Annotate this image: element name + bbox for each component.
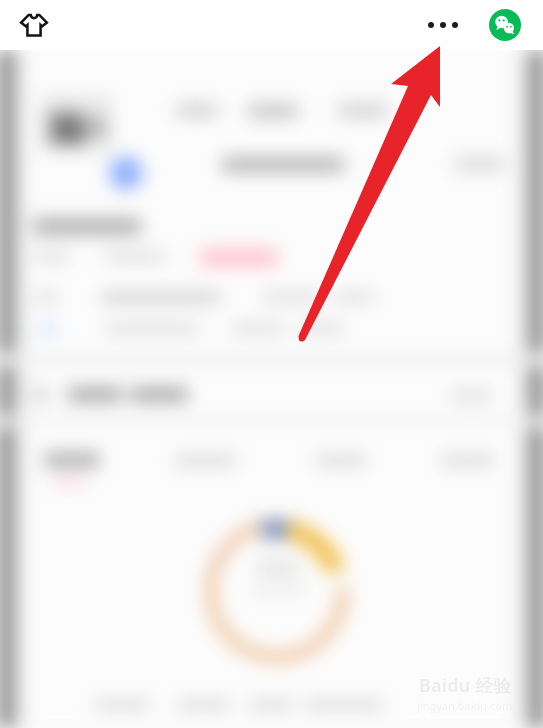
button[interactable]: Clothes xyxy=(16,7,52,43)
button[interactable]: More options xyxy=(421,3,465,47)
button[interactable]: Tab 2 xyxy=(147,432,272,494)
staticText: Baidu 经验 xyxy=(419,673,511,698)
button[interactable]: Tab 1 xyxy=(22,432,147,494)
staticText: jingyan.baidu.com xyxy=(417,698,513,713)
button[interactable]: Tab 3 xyxy=(272,432,397,494)
button[interactable]: Section header xyxy=(22,368,521,416)
button[interactable]: Product details xyxy=(22,52,521,348)
button[interactable]: WeChat xyxy=(489,9,521,41)
button[interactable]: Tab 4 xyxy=(397,432,521,494)
button[interactable]: Statistics chart xyxy=(22,496,521,686)
